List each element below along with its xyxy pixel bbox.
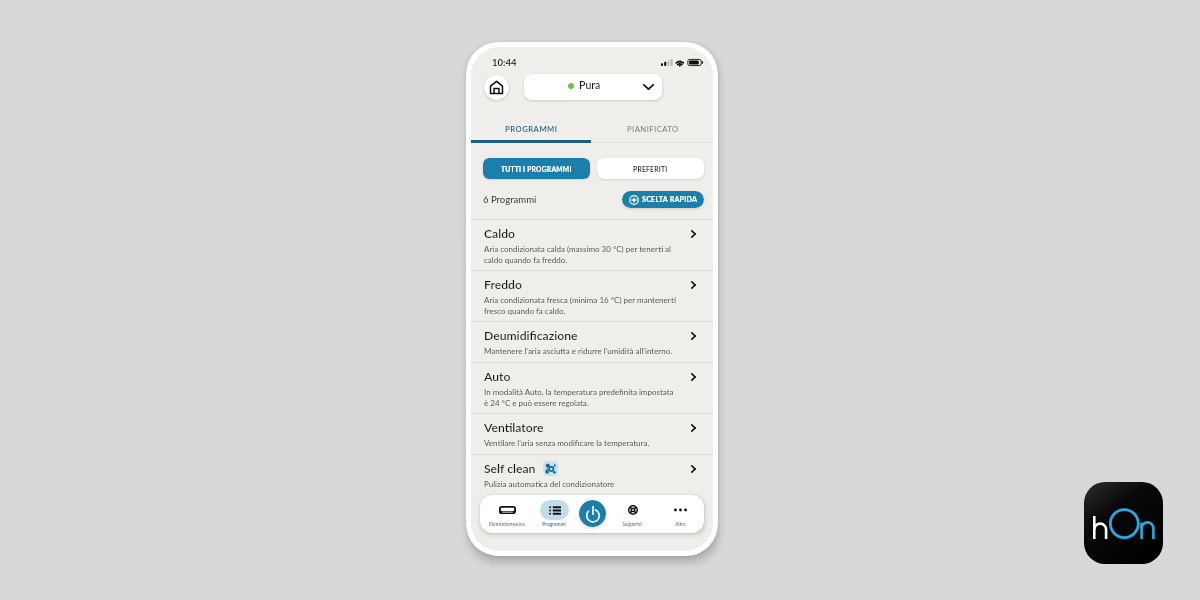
staticText: Auto — [484, 369, 511, 384]
staticText: Mantenere l'aria asciutta e ridurre l'um… — [484, 346, 677, 356]
staticText: Pulizia automatica del condizionatore — [484, 479, 677, 489]
button[interactable]: Home — [484, 75, 509, 100]
staticText: 10:44 — [492, 57, 517, 68]
button[interactable]: Power — [579, 500, 606, 527]
staticText: 6 Programmi — [483, 194, 537, 205]
button[interactable]: Ventilatore — [471, 414, 713, 454]
button[interactable]: TUTTI I PROGRAMMI — [483, 158, 590, 179]
staticText: Aria condizionata fresca (minima 16 °C) … — [484, 295, 677, 315]
staticText: SCELTA RAPIDA — [642, 195, 698, 204]
staticText: Ventilatore — [484, 420, 544, 435]
staticText: In modalità Auto, la temperatura predefi… — [484, 387, 677, 407]
button[interactable]: Supporto — [610, 495, 654, 533]
button[interactable]: Programmi — [532, 495, 576, 533]
staticText: Deumidificazione — [484, 328, 578, 343]
staticText: Supporto — [622, 521, 642, 527]
staticText: Caldo — [484, 226, 516, 241]
staticText: Altro — [675, 521, 686, 527]
staticText: Ventilare l'aria senza modificare la tem… — [484, 438, 677, 448]
button[interactable]: Elettrodomestico — [485, 495, 529, 533]
button[interactable]: PREFERITI — [597, 158, 704, 179]
staticText: Freddo — [484, 277, 522, 292]
button[interactable]: PIANIFICATO — [592, 115, 713, 143]
button[interactable]: Caldo — [471, 220, 713, 270]
button[interactable]: Deumidificazione — [471, 322, 713, 362]
button[interactable]: Auto — [471, 363, 713, 413]
button[interactable]: Altro — [658, 495, 702, 533]
staticText: Aria condizionata calda (massimo 30 °C) … — [484, 244, 677, 264]
staticText: Pura — [579, 79, 601, 92]
button[interactable]: Self clean — [471, 455, 713, 495]
staticText: PREFERITI — [633, 165, 668, 173]
staticText: Programmi — [542, 521, 566, 527]
staticText: PROGRAMMI — [505, 124, 558, 133]
staticText: TUTTI I PROGRAMMI — [501, 165, 572, 173]
staticText: Elettrodomestico — [489, 521, 525, 527]
staticText: Self clean — [484, 461, 536, 476]
button[interactable]: PROGRAMMI — [471, 115, 592, 143]
staticText: PIANIFICATO — [627, 124, 679, 133]
button[interactable]: Pura — [524, 74, 662, 100]
button[interactable]: SCELTA RAPIDA — [622, 191, 704, 208]
button[interactable]: Freddo — [471, 271, 713, 321]
